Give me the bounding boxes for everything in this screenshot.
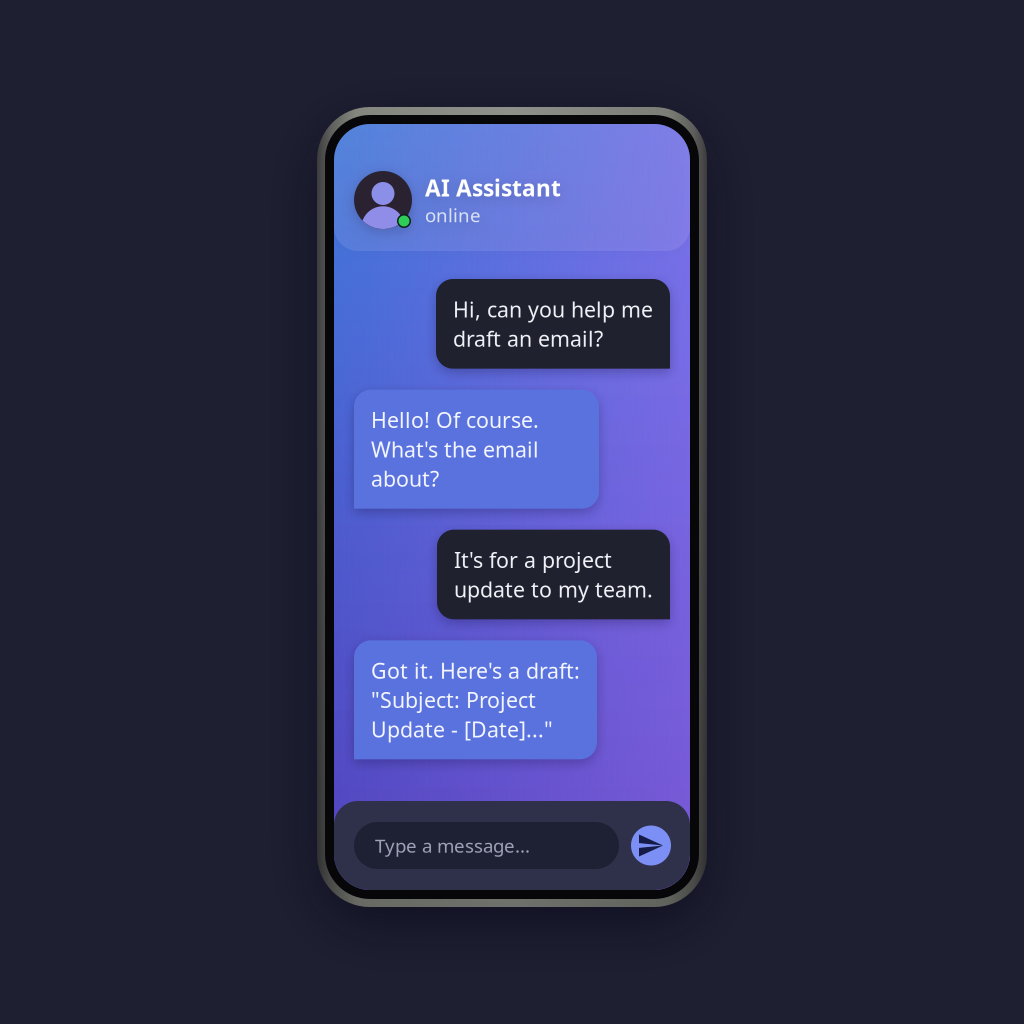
staticText: AI Assistant — [425, 173, 561, 203]
staticText: about? — [371, 464, 439, 493]
button[interactable]: Hi, can you help me — [436, 279, 670, 369]
staticText: Got it. Here's a draft: — [371, 656, 580, 685]
button[interactable]: AI Assistant — [334, 124, 690, 251]
staticText: What's the email — [371, 435, 539, 463]
button[interactable]: Got it. Here's a draft: — [354, 640, 597, 759]
staticText: "Subject: Project — [371, 686, 536, 714]
button[interactable]: It's for a project — [437, 530, 670, 619]
button[interactable]: Send — [631, 825, 671, 865]
button[interactable]: Type a message... — [354, 822, 619, 869]
staticText: It's for a project — [454, 546, 612, 574]
staticText: draft an email? — [453, 324, 603, 353]
button[interactable]: Hello! Of course. — [354, 390, 599, 509]
staticText: Type a message... — [375, 833, 530, 858]
staticText: update to my team. — [454, 575, 653, 603]
staticText: Update - [Date]..." — [371, 715, 553, 743]
staticText: Hi, can you help me — [453, 295, 653, 323]
staticText: online — [425, 203, 481, 227]
staticText: Hello! Of course. — [371, 406, 539, 434]
